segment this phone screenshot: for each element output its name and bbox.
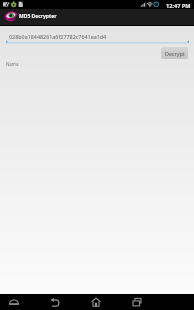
staticText: 12:47 PM (166, 2, 191, 10)
staticText: Nama (6, 61, 19, 67)
button[interactable]: Screenshot (0, 294, 30, 310)
button[interactable]: Decrypt (161, 47, 188, 59)
staticText: Decrypt (165, 50, 185, 57)
button[interactable]: Back (39, 294, 71, 310)
button[interactable]: Recents (121, 294, 153, 310)
button[interactable]: Home (80, 294, 112, 310)
staticText: 028b0a18448261a6f27782c7641ea1d4 (9, 33, 107, 40)
staticText: MD5 Decrypter (19, 13, 57, 20)
